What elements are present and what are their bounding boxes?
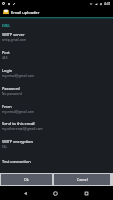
button[interactable]: Back <box>18 186 32 200</box>
button[interactable]: From <box>0 104 113 120</box>
button[interactable]: Ok <box>1 174 52 185</box>
staticText: EMAIL <box>2 24 10 27</box>
button[interactable]: App icon <box>3 9 9 15</box>
staticText: 465 <box>2 56 8 60</box>
staticText: Email uploader <box>11 10 40 15</box>
button[interactable]: Send to this email <box>0 121 113 137</box>
staticText: 4:31 <box>104 1 111 6</box>
staticText: Password <box>2 86 20 91</box>
staticText: SSL <box>2 145 8 149</box>
staticText: Ok <box>24 177 29 182</box>
button[interactable]: SMTP encryption <box>0 139 113 155</box>
staticText: Cancel <box>77 177 88 182</box>
staticText: No password <box>2 92 22 96</box>
staticText: Test connection <box>2 159 31 164</box>
staticText: Send to this email <box>2 121 35 126</box>
button[interactable]: Login <box>0 68 113 84</box>
button[interactable]: Password <box>0 86 113 102</box>
staticText: my.email@gmail.com <box>2 74 35 78</box>
button[interactable]: Recents <box>79 186 93 200</box>
staticText: SMTP encryption <box>2 139 33 144</box>
button[interactable]: Home <box>48 186 62 200</box>
staticText: From <box>2 104 12 109</box>
staticText: SMTP server <box>2 32 25 37</box>
staticText: smtp.gmail.com <box>2 38 27 42</box>
staticText: Port <box>2 50 10 55</box>
staticText: my.email@gmail.com <box>2 110 35 114</box>
button[interactable]: SMTP server <box>0 32 113 48</box>
button[interactable]: Cancel <box>54 174 110 185</box>
staticText: Login <box>2 68 13 73</box>
button[interactable]: Test connection <box>0 159 113 167</box>
button[interactable]: Port <box>0 50 113 66</box>
staticText: my.other.email@gmail.com <box>2 127 43 131</box>
